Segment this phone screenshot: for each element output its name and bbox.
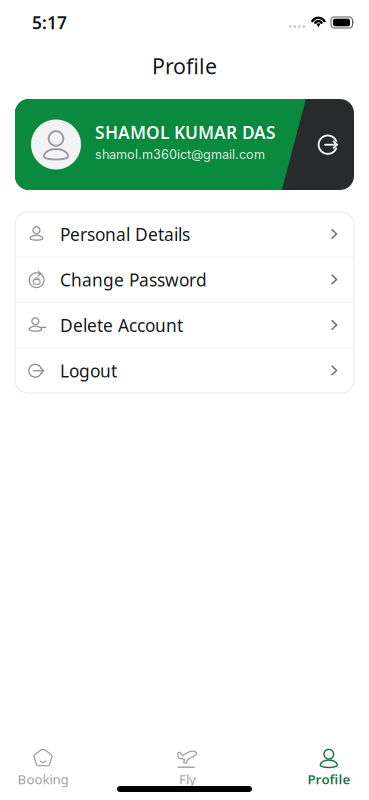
- staticText: Booking: [17, 770, 68, 788]
- staticText: 5:17: [32, 11, 67, 34]
- button[interactable]: Logout: [15, 348, 354, 393]
- staticText: SHAMOL KUMAR DAS: [95, 121, 276, 144]
- staticText: Change Password: [60, 268, 207, 291]
- button[interactable]: Personal Details: [15, 212, 354, 256]
- staticText: Logout: [60, 359, 117, 382]
- button[interactable]: Log out: [302, 99, 354, 190]
- button[interactable]: Booking: [0, 747, 86, 787]
- staticText: shamol.m360ict@gmail.com: [95, 147, 265, 162]
- button[interactable]: Delete Account: [15, 303, 354, 347]
- button[interactable]: Profile: [289, 747, 369, 787]
- staticText: Profile: [307, 770, 350, 788]
- staticText: Fly: [179, 770, 196, 788]
- button[interactable]: Fly: [157, 747, 217, 787]
- button[interactable]: Change Password: [15, 257, 354, 302]
- staticText: Delete Account: [60, 314, 183, 337]
- staticText: Profile: [152, 52, 217, 80]
- staticText: Personal Details: [60, 223, 190, 246]
